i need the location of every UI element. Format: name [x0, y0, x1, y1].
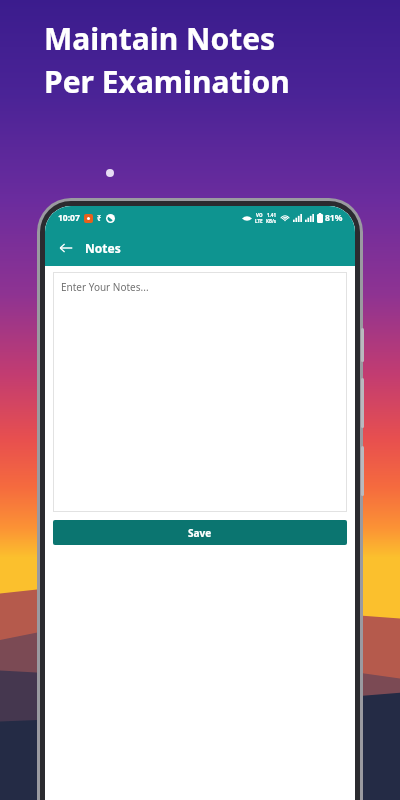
staticText: 1.41	[267, 212, 276, 218]
button[interactable]: Save	[53, 520, 347, 545]
button[interactable]: Back	[53, 235, 79, 261]
staticText: 10:07	[58, 212, 80, 224]
staticText: 81%	[325, 212, 343, 224]
staticText: Notes	[85, 240, 121, 256]
staticText: Save	[188, 526, 212, 540]
staticText: VO	[256, 212, 263, 218]
staticText: LTE	[255, 218, 263, 224]
staticText: ₹	[97, 213, 102, 223]
staticText: Enter Your Notes...	[61, 280, 149, 294]
staticText: Per Examination	[44, 61, 290, 102]
staticText: Maintain Notes	[44, 18, 276, 59]
staticText: KB/s	[266, 218, 277, 224]
button[interactable]: Enter Your Notes...	[53, 272, 347, 512]
